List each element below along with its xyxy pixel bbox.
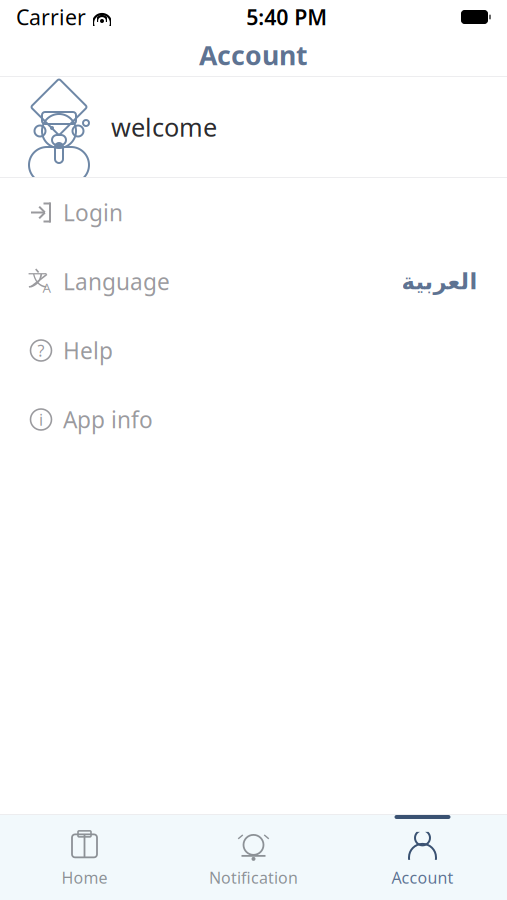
button[interactable]: Home [0,815,169,900]
staticText: Help [63,335,113,365]
staticText: Login [63,197,123,227]
staticText: App info [63,404,153,434]
button[interactable]: Account [338,815,507,900]
staticText: العربية [401,269,477,294]
staticText: Home [61,867,107,888]
staticText: i [39,409,43,430]
button[interactable]: Login [0,178,507,247]
staticText: welcome [111,110,217,144]
staticText: A [42,279,51,296]
button[interactable]: 文 [0,247,507,316]
staticText: 文 [28,266,48,291]
staticText: 5:40 PM [246,3,327,31]
staticText: Account [391,867,453,888]
button[interactable]: ? [0,316,507,385]
staticText: Account [199,37,308,73]
button[interactable]: Notification [169,815,338,900]
staticText: Carrier [16,3,86,31]
staticText: Language [63,266,170,296]
button[interactable]: i [0,385,507,454]
staticText: ? [37,340,44,361]
staticText: Notification [209,867,298,888]
